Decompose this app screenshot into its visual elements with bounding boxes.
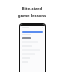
button[interactable] (22, 57, 43, 59)
staticText: Bite-sized (0, 6, 64, 12)
button[interactable] (22, 31, 43, 33)
button[interactable] (22, 45, 43, 47)
button[interactable] (22, 61, 43, 63)
button[interactable] (22, 53, 43, 55)
button[interactable] (22, 49, 43, 51)
staticText: game lessons (0, 13, 64, 19)
button[interactable]: Menu (22, 27, 43, 28)
button[interactable] (22, 37, 31, 39)
button[interactable] (22, 41, 43, 43)
